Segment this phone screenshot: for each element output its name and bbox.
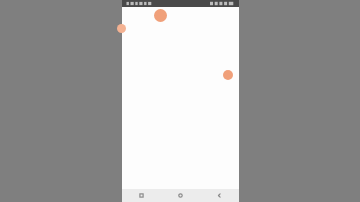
button[interactable]: Back	[200, 189, 239, 202]
button[interactable]: Home	[161, 189, 200, 202]
button[interactable]: Recent apps	[122, 189, 161, 202]
